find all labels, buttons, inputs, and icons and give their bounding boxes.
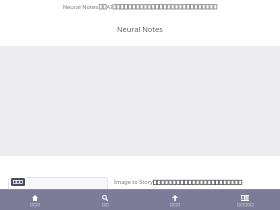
button[interactable] [11,178,25,186]
button[interactable]: Library [210,189,280,210]
button[interactable]: Search [70,189,140,210]
button[interactable]: Home [0,189,70,210]
staticText: Neural Notes [117,24,163,34]
button[interactable]: Create [140,189,210,210]
button[interactable] [8,177,108,194]
